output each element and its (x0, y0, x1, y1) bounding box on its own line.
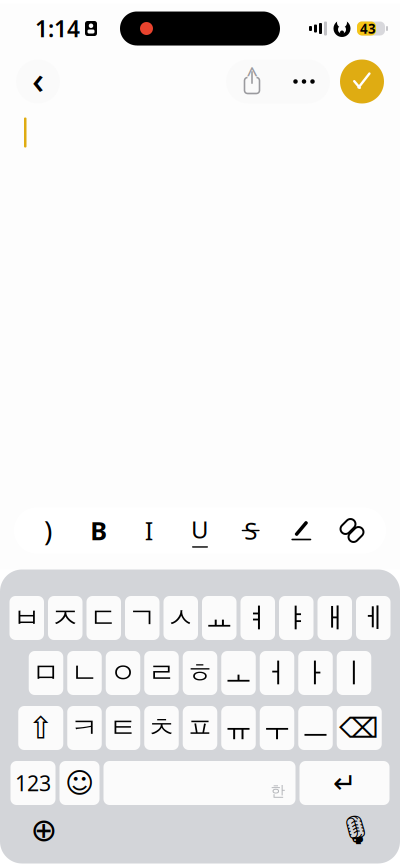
staticText: ㅇ (109, 656, 137, 690)
button[interactable]: ㅗ (221, 651, 256, 695)
button[interactable]: S (229, 507, 273, 553)
staticText: ↵ (333, 767, 356, 799)
staticText: ㄱ (128, 601, 156, 635)
staticText: ㅕ (244, 601, 272, 635)
staticText: ㄹ (147, 656, 175, 690)
button[interactable]: ㅛ (202, 596, 236, 640)
staticText: ㅍ (186, 711, 214, 745)
staticText: ㅗ (224, 656, 252, 690)
button[interactable]: ㅇ (106, 651, 140, 695)
staticText: ㅈ (51, 601, 79, 635)
button[interactable]: B (77, 507, 121, 553)
staticText: 🎙 (338, 814, 374, 846)
button[interactable]: ㅠ (221, 706, 256, 750)
button[interactable]: ㄴ (67, 651, 102, 695)
button[interactable]: Change keyboard (22, 808, 66, 852)
button[interactable]: ㅂ (9, 596, 44, 640)
staticText: ㅂ (13, 601, 41, 635)
button[interactable]: ㅎ (183, 651, 217, 695)
button[interactable]: Shift (18, 706, 63, 750)
button[interactable]: Return (299, 761, 389, 805)
staticText: 123 (15, 769, 51, 797)
staticText: ㅏ (301, 656, 329, 690)
staticText: ☺ (65, 767, 94, 799)
button[interactable]: ㅅ (163, 596, 198, 640)
staticText: ⊕ (30, 812, 57, 848)
button[interactable]: ㄷ (86, 596, 121, 640)
staticText: ㅎ (186, 656, 214, 690)
staticText: ㄷ (90, 601, 118, 635)
staticText: ㅣ (340, 656, 368, 690)
button[interactable]: ㅑ (279, 596, 313, 640)
button[interactable]: Highlight (279, 507, 323, 553)
staticText: ㅁ (32, 656, 60, 690)
button[interactable]: ㅡ (298, 706, 333, 750)
button[interactable]: ㅁ (29, 651, 63, 695)
button[interactable]: ㅓ (260, 651, 294, 695)
staticText: ㅑ (282, 601, 310, 635)
button[interactable]: ㅐ (317, 596, 352, 640)
button[interactable]: ㅏ (298, 651, 333, 695)
button[interactable]: ㅣ (337, 651, 371, 695)
staticText: U (191, 513, 209, 545)
staticText: 1:14 (35, 13, 80, 43)
button[interactable]: ㄱ (125, 596, 159, 640)
button[interactable]: ㅈ (48, 596, 82, 640)
button[interactable]: ㅕ (240, 596, 275, 640)
staticText: ㅋ (70, 711, 98, 745)
button[interactable]: Space (103, 761, 295, 805)
staticText: ‹ (32, 55, 44, 104)
button[interactable]: ㅋ (67, 706, 102, 750)
button[interactable]: More (278, 59, 330, 103)
staticText: ㅛ (205, 601, 233, 635)
button[interactable]: ㅜ (260, 706, 294, 750)
button[interactable]: ㅌ (106, 706, 140, 750)
button[interactable]: Link (330, 507, 374, 553)
staticText: I (145, 514, 154, 547)
staticText: ㅜ (263, 711, 291, 745)
button[interactable]: 123 (10, 761, 55, 805)
staticText: ㄴ (70, 656, 98, 690)
staticText: 43 (360, 20, 376, 37)
button[interactable]: Back (16, 57, 60, 106)
staticText: ㅐ (321, 601, 349, 635)
button[interactable]: ㅔ (356, 596, 390, 640)
staticText: ⌫ (339, 712, 379, 744)
staticText: ) (44, 512, 52, 549)
button[interactable]: ㅊ (144, 706, 179, 750)
staticText: S (244, 515, 257, 546)
staticText: ㅓ (263, 656, 291, 690)
staticText: 한 (270, 782, 285, 800)
button[interactable]: I (127, 507, 171, 553)
button[interactable]: ㄹ (144, 651, 179, 695)
staticText: ㅔ (359, 601, 387, 635)
button[interactable]: Done (340, 59, 384, 103)
staticText: ㅅ (167, 601, 195, 635)
button[interactable]: Dictation (334, 808, 378, 852)
staticText: B (90, 514, 107, 547)
staticText: ㅊ (147, 711, 175, 745)
staticText: ㅌ (109, 711, 137, 745)
staticText: ㅠ (224, 711, 252, 745)
staticText: ^ (246, 60, 257, 87)
button[interactable]: Share (226, 59, 278, 103)
button[interactable]: U (178, 507, 222, 553)
button[interactable]: Emoji (59, 761, 99, 805)
button[interactable]: Undo (26, 507, 70, 553)
staticText: ㅡ (301, 711, 329, 745)
button[interactable]: Delete (337, 706, 382, 750)
button[interactable]: ㅍ (183, 706, 217, 750)
staticText: ⇧ (28, 711, 54, 745)
